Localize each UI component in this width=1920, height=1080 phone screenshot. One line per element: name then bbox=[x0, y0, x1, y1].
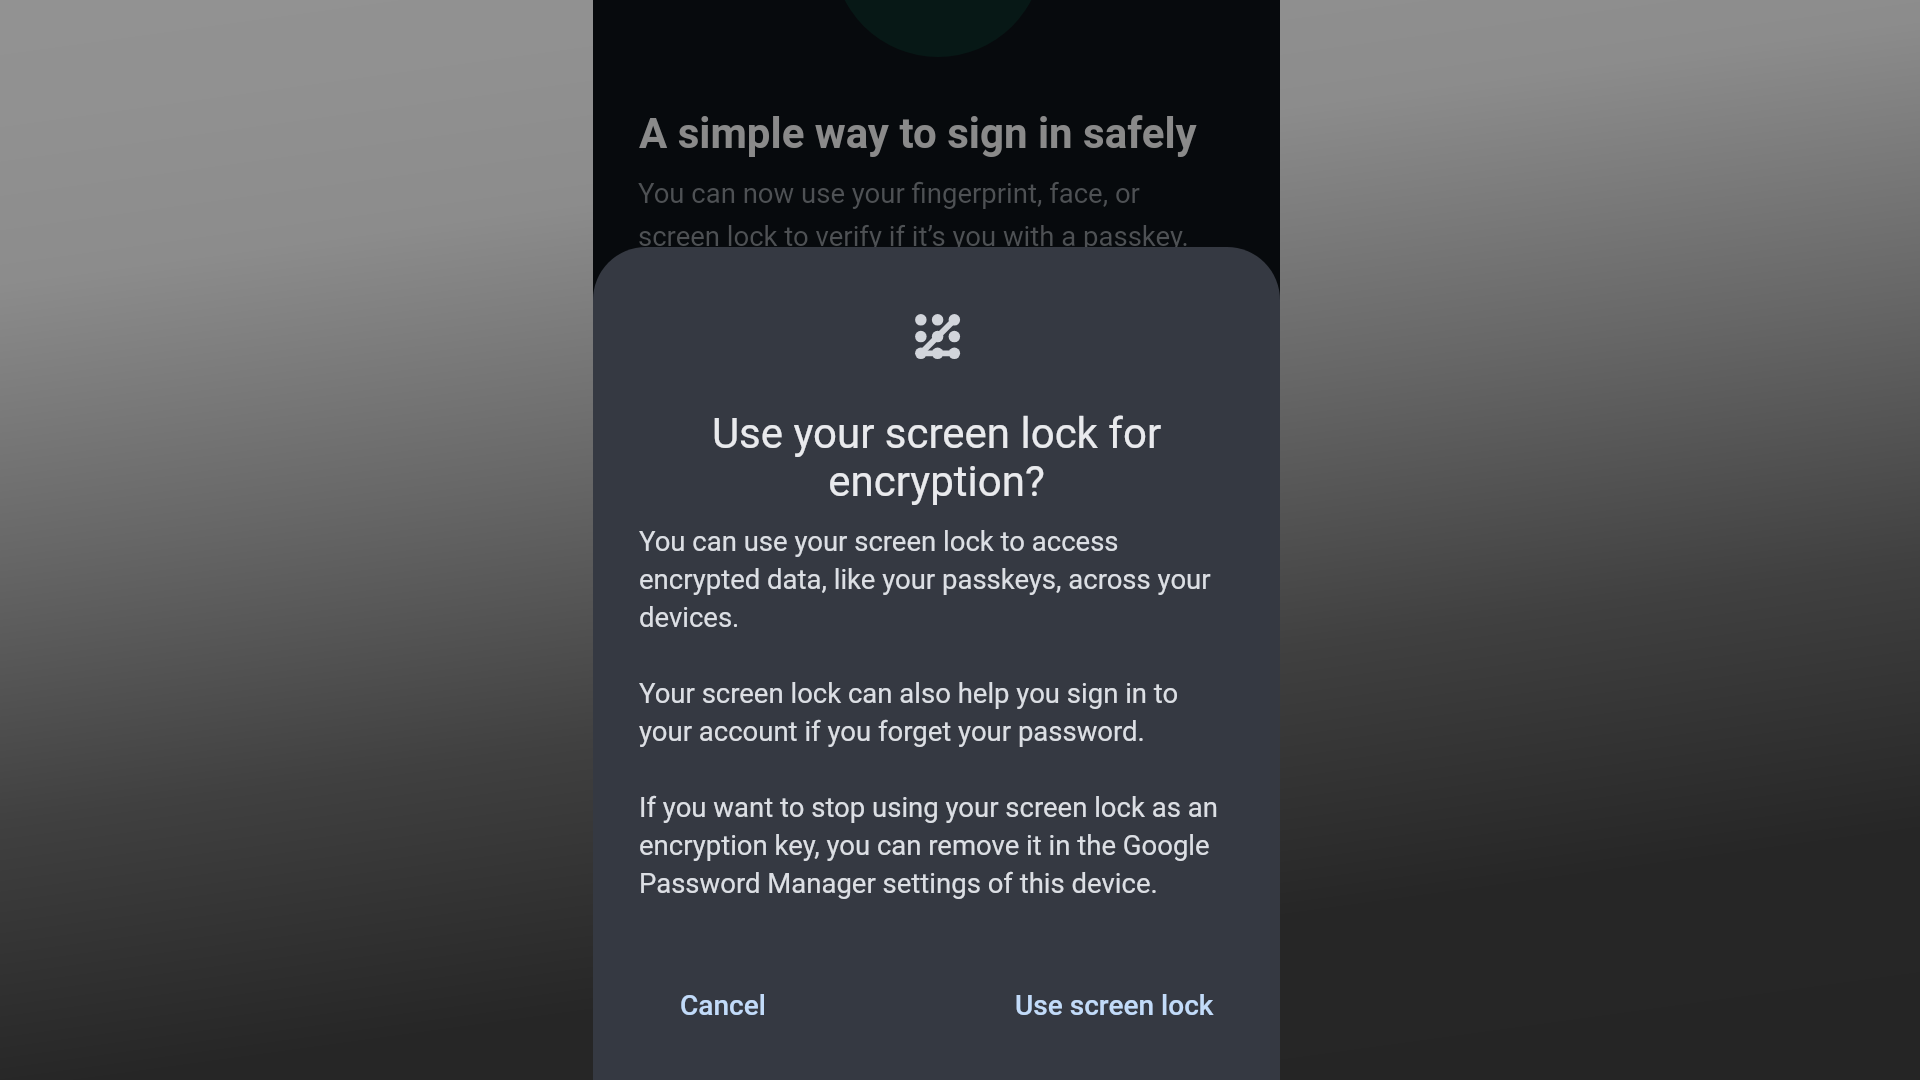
button[interactable]: Cancel bbox=[650, 973, 796, 1038]
staticText: Use your screen lock for encryption? bbox=[645, 409, 1228, 507]
staticText: You can now use your fingerprint, face, … bbox=[638, 177, 1189, 253]
button[interactable]: Use screen lock bbox=[985, 973, 1244, 1038]
staticText: Cancel bbox=[680, 989, 766, 1022]
staticText: Use screen lock bbox=[1015, 989, 1214, 1022]
other: Screen lock pattern bbox=[914, 313, 960, 359]
staticText: You can use your screen lock to access e… bbox=[639, 525, 1233, 900]
staticText: A simple way to sign in safely bbox=[639, 109, 1197, 158]
